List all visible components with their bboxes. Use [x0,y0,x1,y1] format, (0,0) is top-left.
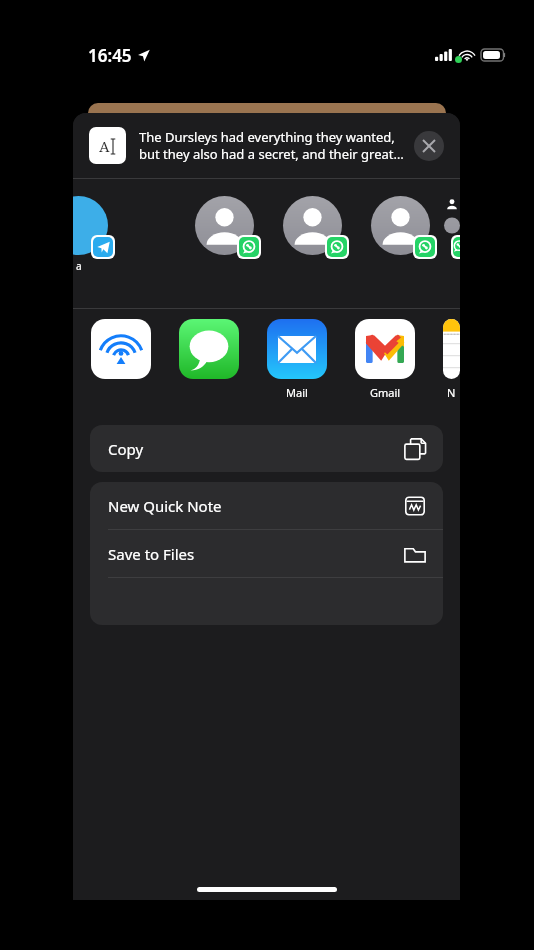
staticText: Gmail [370,385,401,400]
button[interactable]: Notes [443,319,460,400]
staticText: Copy [108,439,404,459]
button[interactable]: Share with WhatsApp contact [268,179,356,255]
button[interactable]: Save to Files [90,530,443,577]
staticText: New Quick Note [108,496,404,516]
button[interactable]: Share with WhatsApp contact [444,179,460,255]
staticText: Save to Files [108,544,404,564]
button[interactable]: AirDrop [91,319,179,379]
button[interactable]: Copy [90,425,443,472]
staticText: a [76,259,82,273]
button[interactable]: Close [414,131,444,161]
button[interactable]: Gmail [355,319,443,400]
staticText: Mail [286,385,308,400]
button[interactable]: Telegram contact [73,179,132,273]
staticText: A [99,136,110,156]
button[interactable]: Share with WhatsApp contact [356,179,444,255]
button[interactable]: Share with WhatsApp contact [180,179,268,255]
staticText: N [447,385,456,400]
button[interactable]: New Quick Note [90,482,443,529]
button[interactable]: Mail [267,319,355,400]
staticText: The Dursleys had everything they wanted,… [139,128,404,163]
button[interactable]: Messages [179,319,267,379]
staticText: 16:45 [88,44,132,67]
